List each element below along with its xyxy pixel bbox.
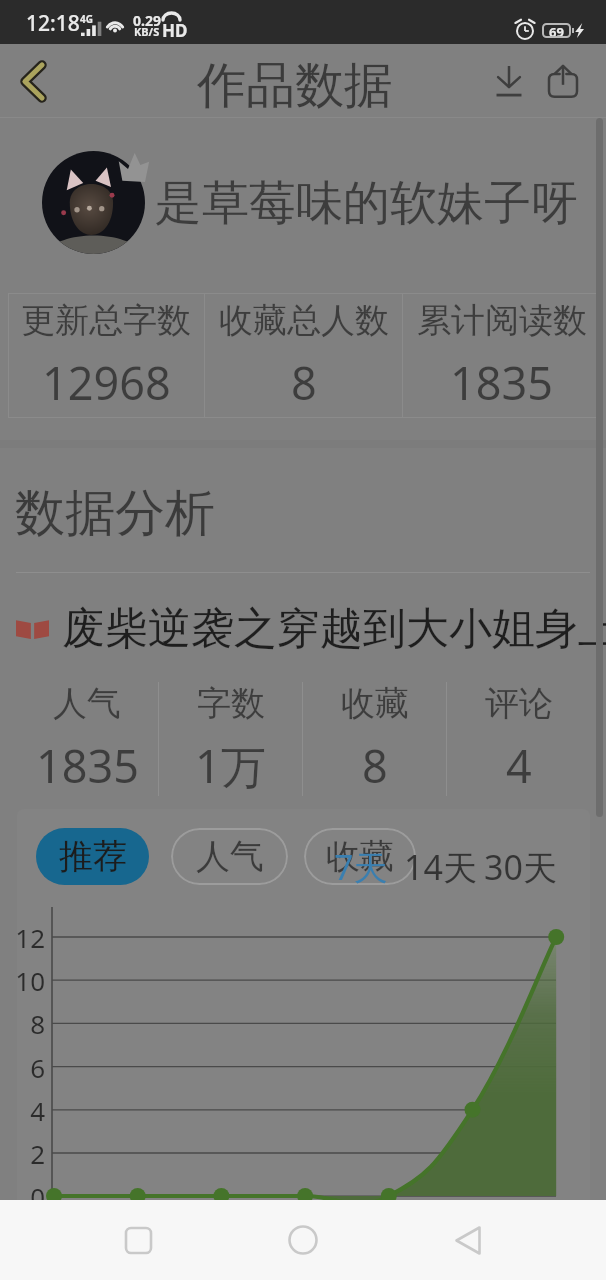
- staticText: 评论: [485, 682, 553, 725]
- staticText: 12: [15, 920, 45, 955]
- button[interactable]: 7天: [334, 844, 388, 890]
- staticText: 12:18: [26, 9, 80, 38]
- staticText: 收藏: [326, 835, 394, 878]
- staticText: 推荐: [59, 835, 127, 878]
- staticText: 收藏: [341, 682, 409, 725]
- staticText: 4G: [80, 12, 93, 26]
- staticText: HD: [162, 19, 188, 42]
- staticText: 字数: [197, 682, 265, 725]
- staticText: 8: [362, 735, 388, 796]
- staticText: 7天: [334, 844, 388, 890]
- staticText: 数据分析: [15, 482, 215, 545]
- button[interactable]: 30天: [484, 844, 557, 890]
- button[interactable]: Back: [0, 44, 66, 118]
- staticText: 6: [30, 1050, 45, 1085]
- staticText: 4: [506, 735, 532, 796]
- staticText: 4: [30, 1093, 45, 1128]
- button[interactable]: Recent apps: [98, 1200, 178, 1280]
- staticText: 累计阅读数: [417, 299, 587, 342]
- button[interactable]: 14天: [404, 844, 477, 890]
- staticText: 14天: [404, 844, 477, 890]
- staticText: 12968: [42, 352, 171, 413]
- staticText: 1835: [450, 352, 553, 413]
- button[interactable]: 收藏总人数: [205, 293, 402, 418]
- button[interactable]: 更新总字数: [8, 293, 204, 418]
- staticText: 30天: [484, 844, 557, 890]
- staticText: 人气: [53, 682, 121, 725]
- button[interactable]: 收藏: [304, 828, 416, 885]
- staticText: 收藏总人数: [219, 299, 389, 342]
- staticText: 人气: [196, 835, 264, 878]
- staticText: 2: [30, 1136, 45, 1171]
- staticText: 0: [30, 1179, 45, 1214]
- button[interactable]: 收藏: [303, 676, 446, 801]
- button[interactable]: 累计阅读数: [403, 293, 600, 418]
- button[interactable]: Back: [428, 1200, 508, 1280]
- button[interactable]: Home: [263, 1200, 343, 1280]
- staticText: 0.29: [133, 11, 161, 30]
- staticText: 废柴逆袭之穿越到大小姐身上: [62, 602, 606, 656]
- staticText: 是草莓味的软妹子呀: [155, 174, 578, 233]
- button[interactable]: 评论: [447, 676, 590, 801]
- staticText: 69: [549, 23, 564, 38]
- button[interactable]: 推荐: [36, 828, 149, 885]
- staticText: KB/S: [134, 24, 160, 39]
- button[interactable]: 字数: [159, 676, 302, 801]
- staticText: 作品数据: [197, 55, 393, 117]
- staticText: 8: [30, 1006, 45, 1041]
- staticText: 10: [15, 963, 45, 998]
- button[interactable]: 人气: [16, 676, 158, 801]
- button[interactable]: 人气: [171, 828, 288, 885]
- staticText: 更新总字数: [21, 299, 191, 342]
- staticText: 8: [291, 352, 317, 413]
- button[interactable]: Share: [533, 44, 593, 118]
- staticText: 1万: [195, 735, 266, 796]
- button[interactable]: Download: [479, 44, 539, 118]
- staticText: 1835: [36, 735, 139, 796]
